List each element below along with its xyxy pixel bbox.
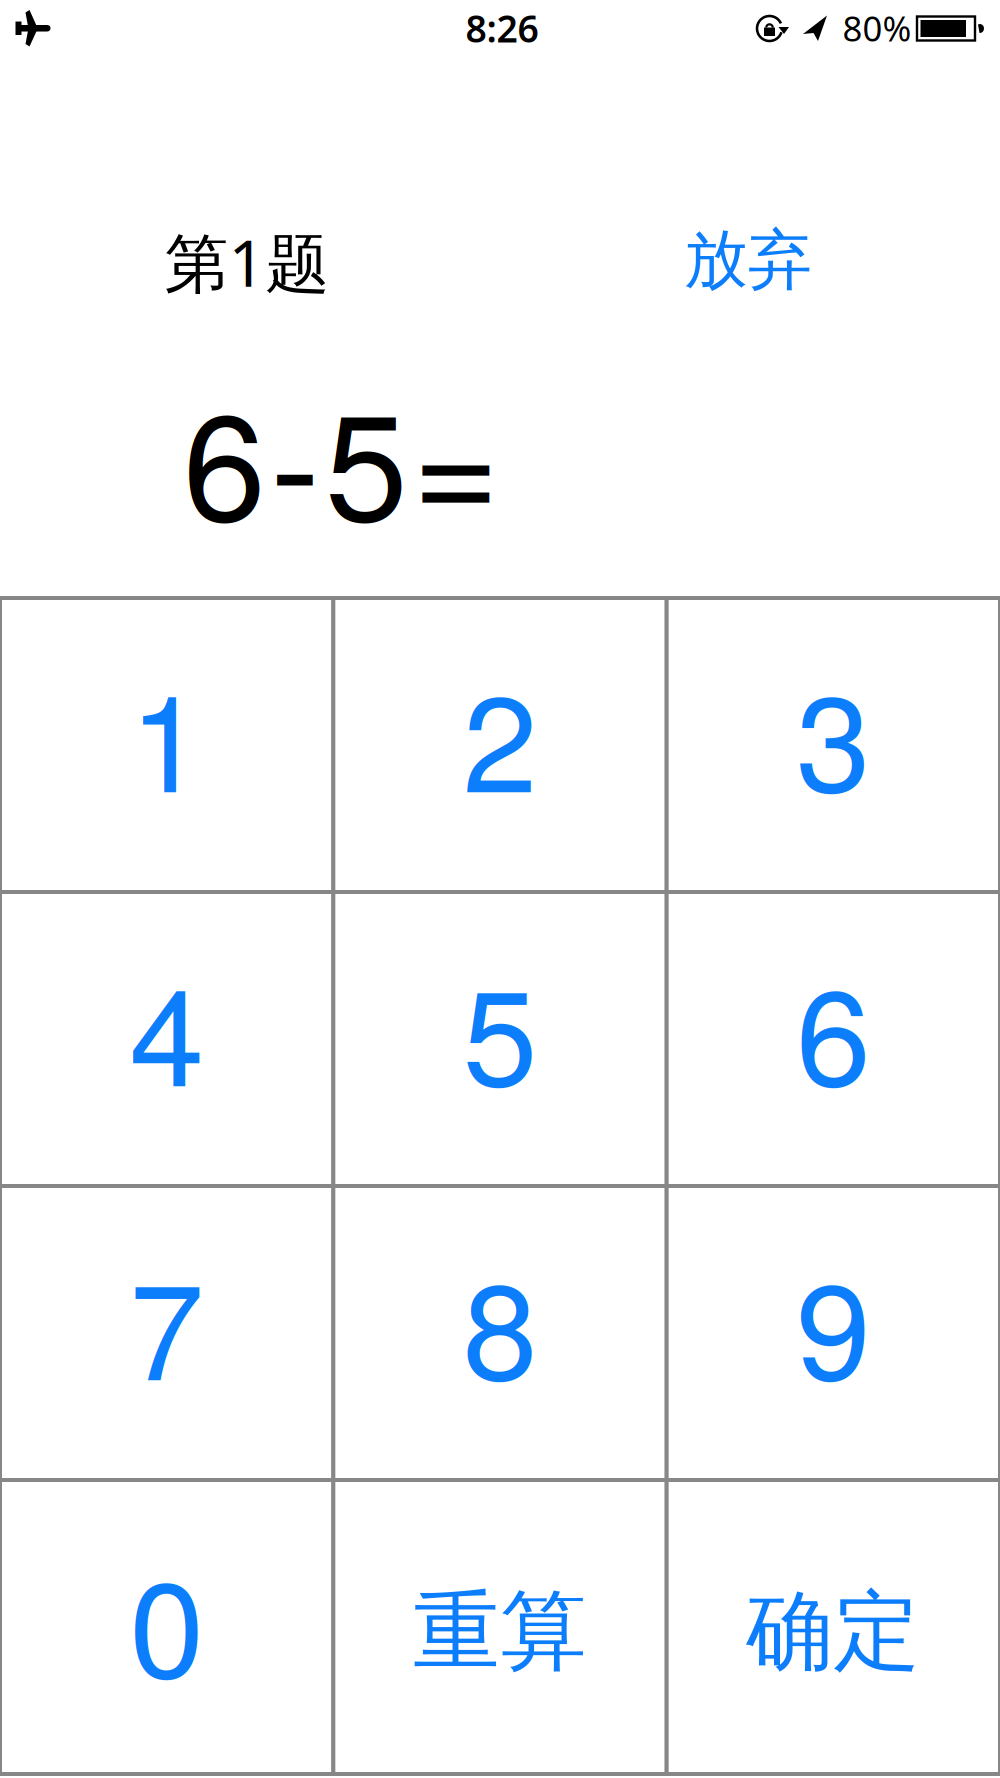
staticText: 8 <box>462 1226 537 1418</box>
staticText: 0 <box>129 1524 204 1716</box>
button[interactable]: 8 <box>333 1186 667 1480</box>
button[interactable]: 4 <box>0 892 333 1186</box>
staticText: 1 <box>129 638 204 830</box>
button[interactable]: 0 <box>0 1480 333 1774</box>
staticText: 2 <box>462 638 537 830</box>
staticText: 7 <box>129 1226 204 1418</box>
button[interactable]: 1 <box>0 598 333 892</box>
button[interactable]: 放弃 <box>648 210 848 310</box>
staticText: 重算 <box>413 1579 587 1685</box>
staticText: 9 <box>796 1226 871 1418</box>
staticText: 5 <box>462 932 537 1124</box>
staticText: 80% <box>842 5 911 51</box>
button[interactable]: 9 <box>667 1186 1000 1480</box>
button[interactable]: 6 <box>667 892 1000 1186</box>
staticText: 确定 <box>746 1579 920 1685</box>
button[interactable]: 5 <box>333 892 667 1186</box>
button[interactable]: 3 <box>667 598 1000 892</box>
staticText: 6-5= <box>183 350 499 564</box>
button[interactable]: 确定 <box>667 1480 1000 1774</box>
staticText: 4 <box>129 932 204 1124</box>
button[interactable]: 重算 <box>333 1480 667 1774</box>
staticText: 6 <box>796 932 871 1124</box>
staticText: 第1题 <box>164 219 329 304</box>
staticText: 8:26 <box>465 3 538 53</box>
button[interactable]: 2 <box>333 598 667 892</box>
button[interactable]: 7 <box>0 1186 333 1480</box>
staticText: 3 <box>796 638 871 830</box>
staticText: 放弃 <box>684 221 812 299</box>
